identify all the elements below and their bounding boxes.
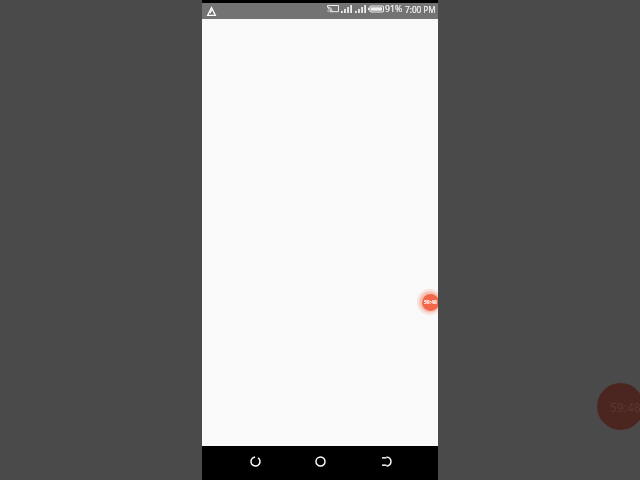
button[interactable]: Back	[239, 446, 271, 476]
button[interactable]: Home	[304, 446, 336, 476]
button[interactable]: Recents	[370, 446, 402, 476]
button[interactable]: Recording overlay	[597, 383, 640, 430]
staticText: 7:00 PM	[405, 4, 436, 15]
staticText: 91%	[385, 3, 403, 15]
button[interactable]: Recording timer	[422, 294, 438, 311]
staticText: 59:48	[610, 399, 640, 415]
staticText: 59:48	[424, 299, 437, 306]
